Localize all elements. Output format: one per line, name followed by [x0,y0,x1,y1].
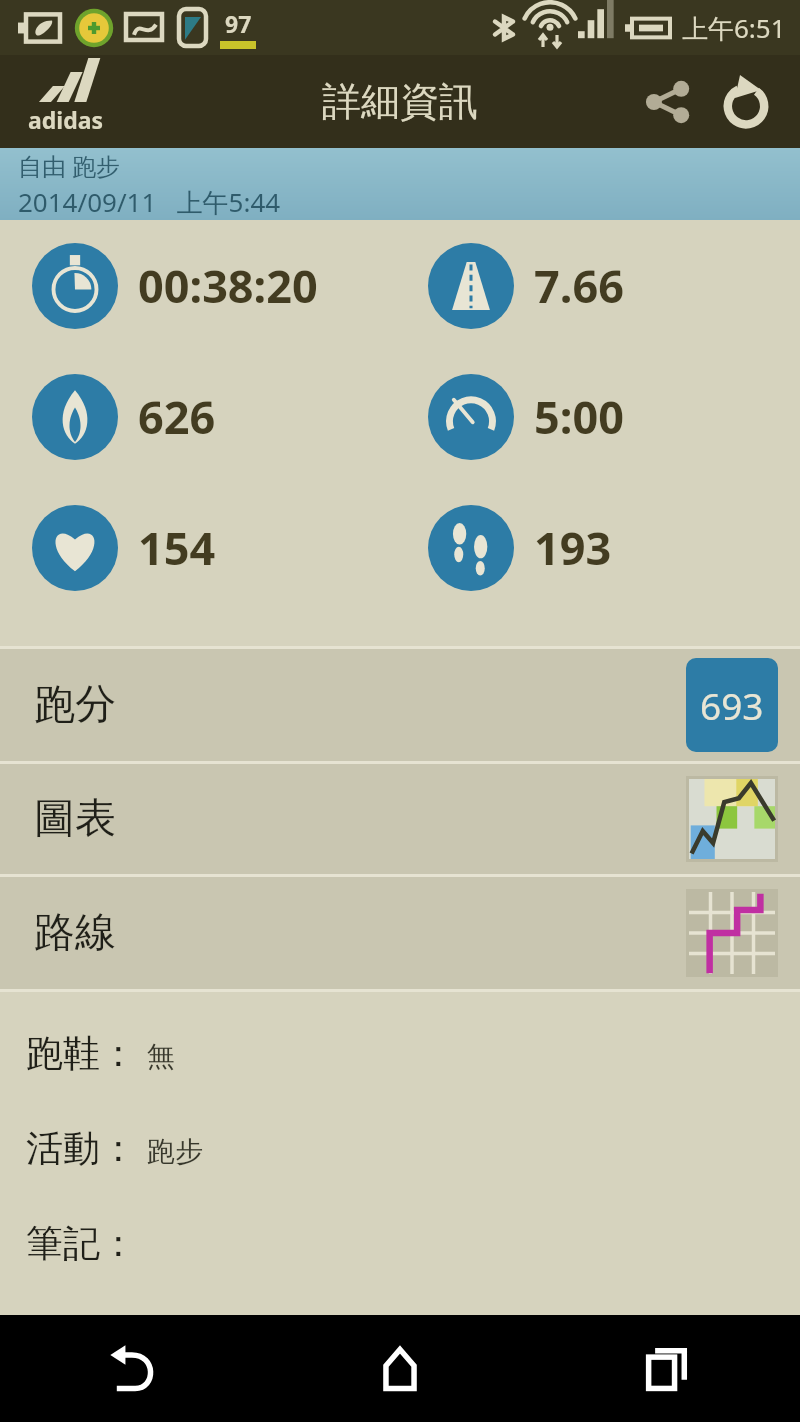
button[interactable]: Refresh [712,68,780,136]
staticText: 詳細資訊 [322,77,478,126]
staticText: 193 [534,517,612,578]
staticText: 上午6:51 [682,10,786,46]
staticText: 活動： [26,1125,137,1172]
button[interactable]: 00:38:20 [32,220,400,351]
button[interactable]: Back [0,1315,266,1422]
button[interactable]: adidas [14,68,118,136]
staticText: 00:38:20 [138,255,318,316]
staticText: 圖表 [34,793,116,845]
staticText: 7.66 [534,255,624,316]
staticText: 跑分 [34,679,116,731]
button[interactable]: 7.66 [428,220,800,351]
button[interactable]: Share [636,70,700,134]
staticText: 97 [225,8,252,39]
staticText: 跑鞋： [26,1030,137,1077]
staticText: 5:00 [534,386,624,447]
staticText: 自由 跑步 [18,149,121,182]
button[interactable]: 154 [32,482,400,613]
button[interactable]: 5:00 [428,351,800,482]
staticText: 路線 [34,907,116,959]
button[interactable]: Recents [533,1315,800,1422]
staticText: 跑步 [147,1134,203,1169]
staticText: 2014/09/11 上午5:44 [18,184,281,220]
button[interactable]: Home [266,1315,533,1422]
button[interactable]: 圖表 [0,764,800,874]
button[interactable]: 193 [428,482,800,613]
staticText: 筆記： [26,1220,137,1267]
button[interactable]: 跑鞋： [26,1030,800,1077]
button[interactable]: 路線 [0,877,800,989]
button[interactable]: 626 [32,351,400,482]
button[interactable]: 筆記： [26,1220,800,1267]
button[interactable]: 自由 跑步 [0,148,800,220]
staticText: 693 [700,680,764,730]
button[interactable]: 活動： [26,1125,800,1172]
staticText: 626 [138,386,216,447]
staticText: 154 [138,517,216,578]
staticText: 無 [147,1039,175,1074]
button[interactable]: 跑分 [0,649,800,761]
staticText: adidas [28,104,104,135]
